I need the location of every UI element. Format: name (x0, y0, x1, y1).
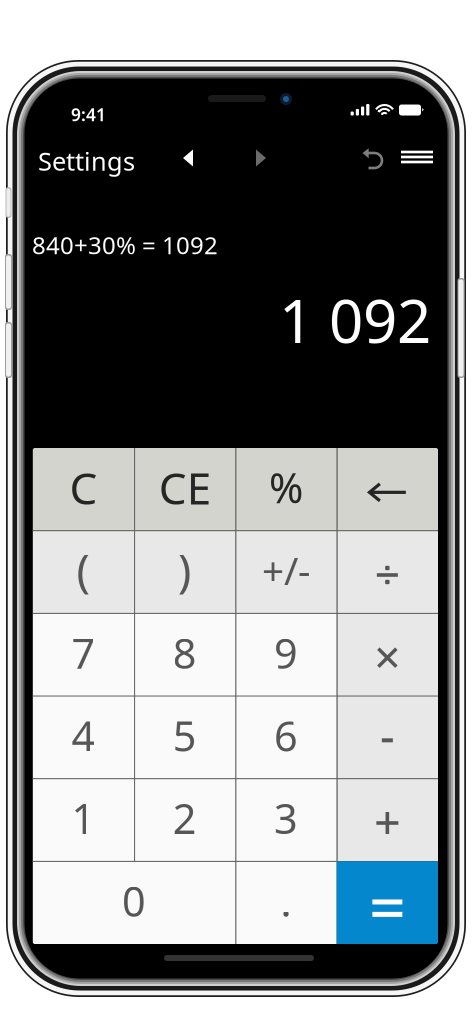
staticText: 6 (274, 708, 298, 763)
staticText: Settings (38, 144, 135, 178)
button[interactable]: Multiply (337, 613, 438, 696)
staticText: 9 (274, 625, 298, 680)
button[interactable]: 0 (33, 861, 235, 944)
button[interactable]: 8 (134, 613, 235, 696)
button[interactable]: 6 (235, 696, 337, 779)
staticText: 3 (274, 791, 298, 845)
staticText: C (69, 458, 97, 516)
staticText: 5 (173, 708, 197, 763)
button[interactable]: 7 (33, 613, 134, 696)
staticText: 1 092 (279, 280, 431, 360)
button[interactable]: 3 (235, 779, 337, 861)
button[interactable]: 4 (33, 696, 134, 779)
button[interactable]: Plus (337, 779, 438, 861)
button[interactable]: +/- (235, 531, 337, 613)
staticText: 2 (173, 791, 197, 845)
button[interactable]: . (235, 861, 337, 944)
button[interactable]: Minus (337, 696, 438, 779)
button[interactable]: 1 (33, 779, 134, 861)
button[interactable]: Menu (398, 142, 436, 172)
button[interactable]: Undo (358, 144, 390, 174)
staticText: 8 (173, 625, 197, 680)
button[interactable]: Settings (38, 145, 148, 177)
button[interactable]: Previous (171, 143, 205, 173)
button[interactable]: ) (134, 531, 235, 613)
staticText: 9:41 (71, 103, 106, 126)
button[interactable]: C (33, 448, 134, 531)
button[interactable]: Next (244, 143, 278, 173)
staticText: 1 (71, 791, 95, 845)
staticText: ) (178, 540, 192, 600)
button[interactable]: CE (134, 448, 235, 531)
button[interactable]: Divide (337, 531, 438, 613)
button[interactable]: 5 (134, 696, 235, 779)
staticText: +/- (262, 544, 310, 596)
staticText: 840+30% = 1092 (32, 229, 218, 261)
button[interactable]: 2 (134, 779, 235, 861)
staticText: . (280, 873, 291, 928)
button[interactable]: % (235, 448, 337, 531)
button[interactable]: 9 (235, 613, 337, 696)
staticText: 4 (71, 708, 95, 763)
button[interactable]: Backspace (337, 448, 438, 531)
button[interactable]: Equals (337, 861, 438, 944)
staticText: 0 (122, 873, 146, 928)
staticText: CE (159, 458, 211, 516)
staticText: % (269, 460, 303, 515)
staticText: 7 (71, 625, 95, 680)
button[interactable]: ( (33, 531, 134, 613)
staticText: ( (76, 540, 90, 600)
